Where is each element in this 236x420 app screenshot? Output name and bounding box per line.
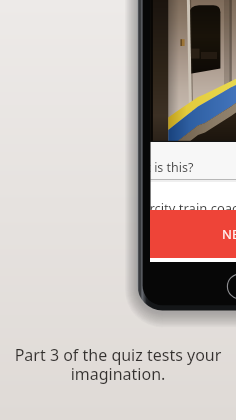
button[interactable]: What is this?: [150, 142, 236, 180]
staticText: NEXT: [222, 225, 236, 243]
staticText: intercity train coach: [150, 199, 236, 217]
staticText: Part 3 of the quiz tests your imaginatio…: [0, 344, 236, 385]
button[interactable]: NEXT: [150, 210, 236, 258]
button[interactable]: intercity train coach: [150, 182, 236, 210]
staticText: What is this?: [150, 159, 194, 176]
